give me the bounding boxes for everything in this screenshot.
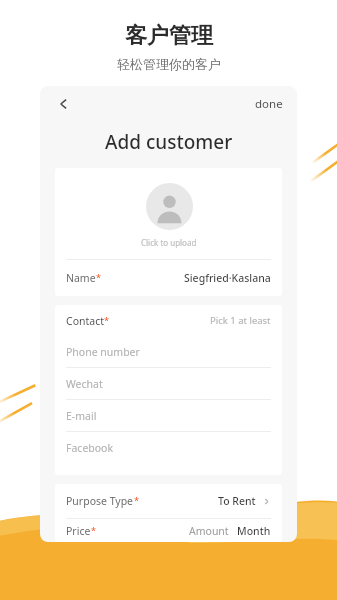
staticText: Purpose Type — [66, 494, 134, 508]
staticText: Add customer — [105, 129, 233, 155]
button[interactable]: Facebook — [55, 432, 282, 463]
staticText: Click to upload — [141, 237, 197, 248]
staticText: Pick 1 at least — [210, 314, 271, 327]
staticText: Amount — [189, 524, 229, 538]
button[interactable]: Phone number — [55, 336, 282, 367]
staticText: Siegfried·Kaslana — [184, 271, 271, 285]
staticText: * — [104, 314, 109, 326]
staticText: Phone number — [66, 345, 140, 359]
staticText: To Rent — [218, 494, 256, 508]
staticText: Contact — [66, 314, 104, 328]
staticText: Month — [237, 524, 271, 538]
staticText: Facebook — [66, 441, 114, 455]
button[interactable]: Price — [55, 519, 282, 542]
staticText: * — [96, 271, 101, 283]
staticText: * — [134, 494, 139, 506]
staticText: Wechat — [66, 377, 103, 391]
button[interactable]: Wechat — [55, 368, 282, 399]
staticText: E-mail — [66, 409, 97, 423]
button[interactable]: Name — [55, 260, 282, 296]
staticText: 客户管理 — [125, 22, 213, 50]
button[interactable]: Click to upload avatar — [55, 183, 282, 248]
button[interactable]: done — [241, 90, 297, 118]
staticText: done — [255, 96, 283, 112]
button[interactable]: Back — [50, 91, 76, 117]
button[interactable]: E-mail — [55, 400, 282, 431]
button[interactable]: Purpose Type — [55, 484, 282, 518]
staticText: * — [91, 524, 96, 536]
staticText: Price — [66, 524, 91, 538]
staticText: Name — [66, 271, 96, 285]
staticText: 轻松管理你的客户 — [117, 56, 221, 72]
